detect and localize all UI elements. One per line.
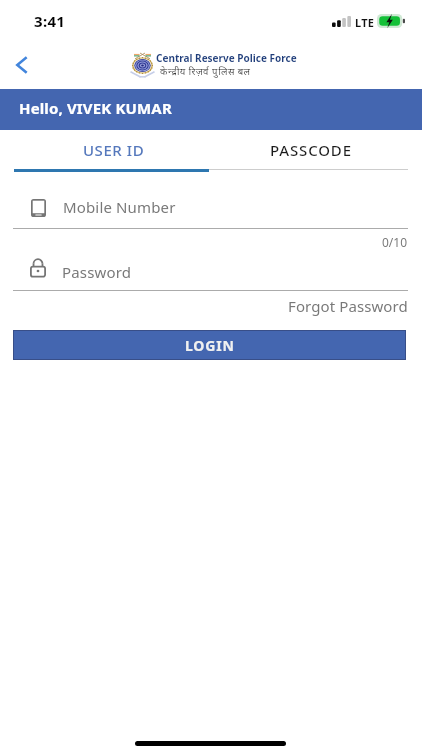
button[interactable]: Back (7, 52, 35, 80)
staticText: PASSCODE (270, 140, 352, 160)
button[interactable]: Hello, VIVEK KUMAR (0, 89, 422, 130)
staticText: Hello, VIVEK KUMAR (19, 98, 172, 118)
button[interactable]: LOGIN (14, 331, 405, 359)
staticText: LTE (355, 15, 375, 30)
button[interactable]: Password (13, 250, 409, 286)
staticText: Mobile Number (63, 197, 176, 217)
button[interactable]: Forgot Password (285, 295, 408, 317)
staticText: 0/10 (382, 234, 408, 250)
staticText: LOGIN (185, 336, 235, 355)
staticText: USER ID (83, 140, 145, 160)
staticText: Password (62, 262, 132, 282)
staticText: Forgot Password (288, 296, 408, 316)
button[interactable]: Mobile Number (13, 189, 409, 227)
button[interactable]: USER ID (16, 131, 211, 169)
staticText: 3:41 (34, 11, 66, 31)
staticText: केन्द्रीय रिज़र्व पुलिस बल (160, 65, 251, 78)
staticText: Central Reserve Police Force (156, 51, 297, 65)
button[interactable]: PASSCODE (211, 131, 410, 169)
